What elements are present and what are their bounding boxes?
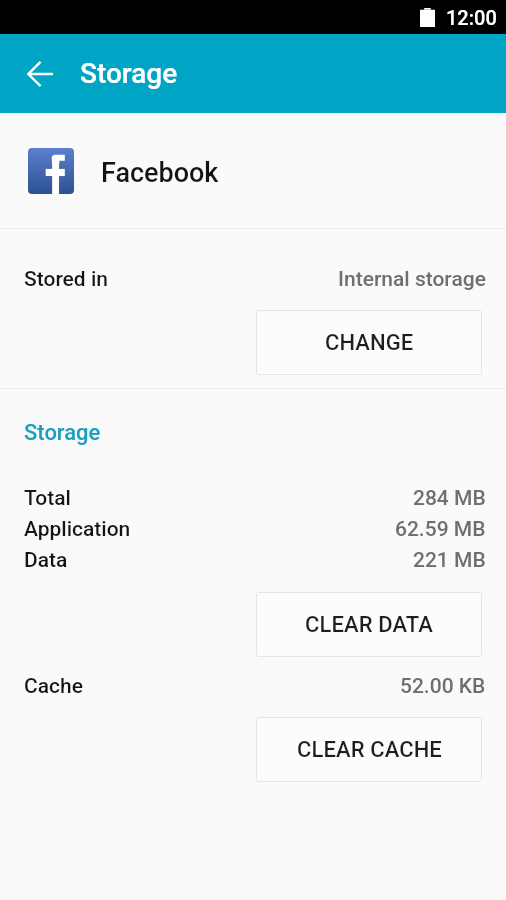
button[interactable]: Facebook	[0, 113, 506, 228]
button[interactable]: CLEAR CACHE	[256, 717, 482, 782]
button[interactable]: CHANGE	[256, 310, 482, 375]
staticText: Application	[24, 517, 131, 542]
button[interactable]: CLEAR DATA	[256, 592, 482, 657]
staticText: 12:00	[446, 6, 497, 29]
staticText: 52.00 KB	[400, 674, 486, 699]
staticText: Data	[24, 548, 68, 573]
staticText: Cache	[24, 674, 83, 699]
staticText: Stored in	[24, 267, 108, 292]
staticText: 221 MB	[413, 548, 486, 573]
staticText: Facebook	[101, 157, 219, 189]
staticText: Storage	[24, 420, 101, 446]
staticText: Storage	[80, 57, 178, 90]
staticText: CLEAR CACHE	[297, 737, 442, 763]
staticText: CLEAR DATA	[305, 612, 433, 638]
button[interactable]: Back	[17, 51, 63, 97]
staticText: 62.59 MB	[395, 517, 486, 542]
staticText: 284 MB	[413, 486, 486, 511]
staticText: Internal storage	[338, 267, 486, 292]
staticText: Total	[24, 486, 71, 511]
staticText: CHANGE	[325, 330, 414, 356]
